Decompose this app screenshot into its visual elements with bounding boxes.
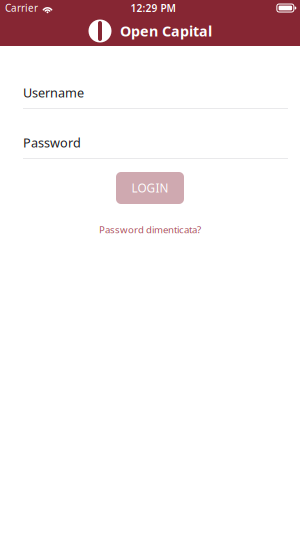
staticText: Open Capital: [120, 21, 212, 41]
button[interactable]: Password dimenticata?: [93, 221, 207, 238]
staticText: Password dimenticata?: [99, 223, 201, 236]
staticText: 12:29 PM: [130, 1, 175, 15]
staticText: Carrier: [5, 1, 38, 15]
staticText: LOGIN: [131, 180, 168, 196]
button[interactable]: LOGIN: [116, 172, 184, 204]
staticText: Password: [23, 134, 81, 151]
staticText: Username: [23, 84, 84, 101]
